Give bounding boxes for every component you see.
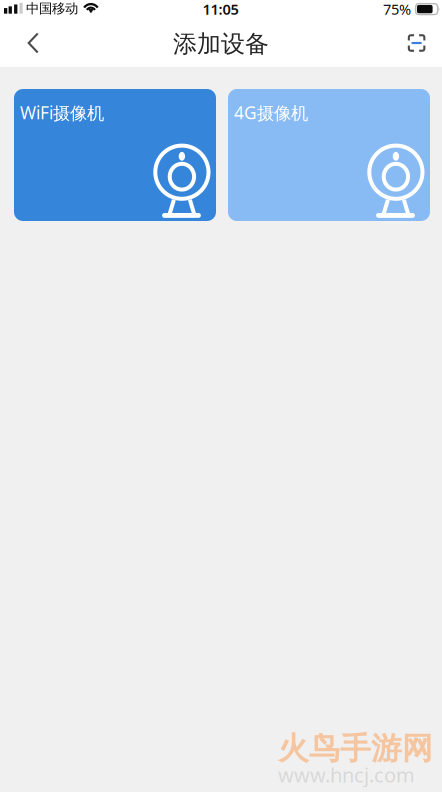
staticText: 75% xyxy=(383,0,411,19)
staticText: 添加设备 xyxy=(173,29,269,59)
staticText: 11:05 xyxy=(202,0,238,19)
staticText: WiFi摄像机 xyxy=(20,101,104,124)
staticText: 4G摄像机 xyxy=(234,101,308,124)
staticText: 火鸟手游网 xyxy=(278,730,433,767)
button[interactable]: 4G摄像机 xyxy=(228,89,430,221)
staticText: 中国移动 xyxy=(26,0,78,17)
button[interactable]: Scan xyxy=(395,23,439,67)
button[interactable]: WiFi摄像机 xyxy=(14,89,216,221)
staticText: www.hncj.com xyxy=(278,761,415,788)
button[interactable]: Back xyxy=(11,23,55,67)
